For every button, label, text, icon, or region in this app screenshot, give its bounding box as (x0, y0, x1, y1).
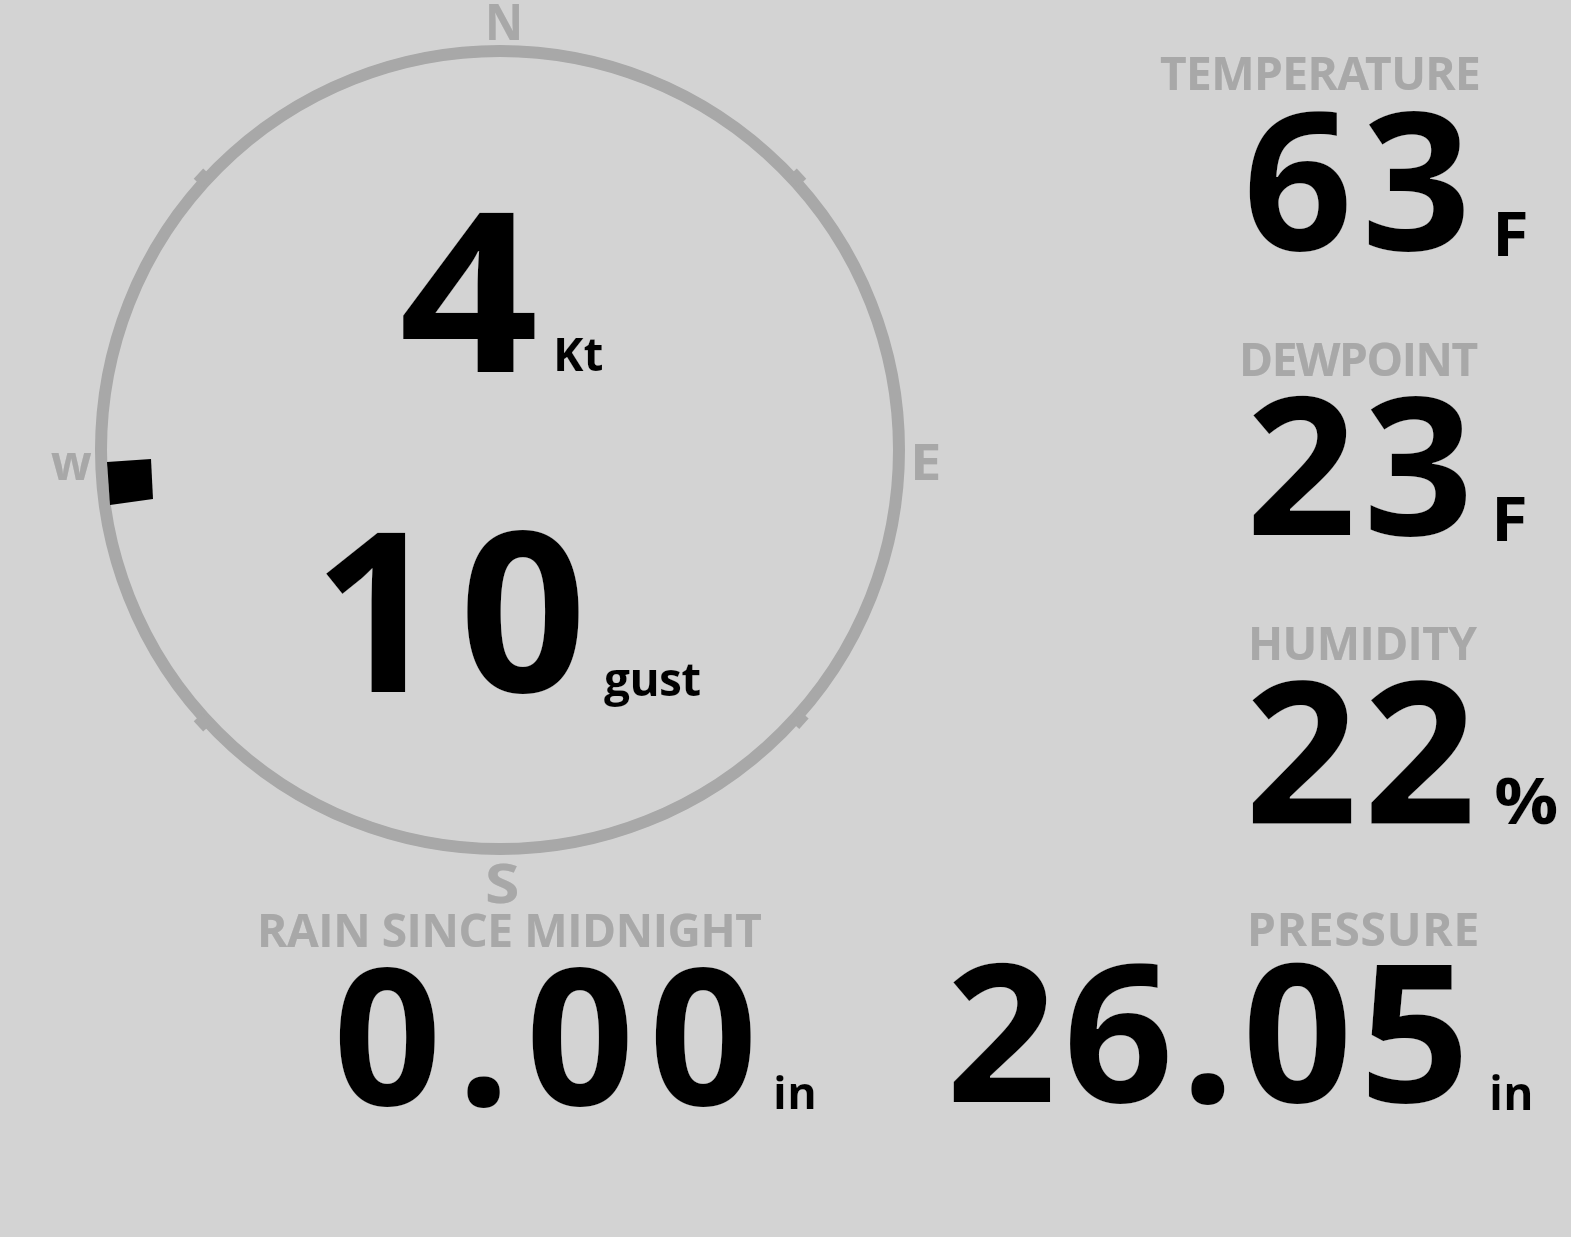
staticText: % (1494, 755, 1559, 844)
button[interactable]: Humidity 22 percent (1150, 610, 1560, 835)
button[interactable]: Wind 4 knots from the west, gusting 10 (95, 45, 905, 855)
staticText: in (773, 1061, 818, 1122)
button[interactable]: Rain since midnight 0.00 inches (250, 895, 830, 1120)
button[interactable]: Dewpoint 23 degrees Fahrenheit (1150, 325, 1550, 550)
staticText: S (485, 846, 520, 918)
staticText: RAIN SINCE MIDNIGHT (257, 898, 762, 961)
staticText: 63 (1243, 45, 1481, 306)
staticText: PRESSURE (1247, 897, 1480, 960)
staticText: w (51, 425, 92, 494)
staticText: TEMPERATURE (1160, 41, 1481, 104)
staticText: F (1491, 477, 1528, 559)
staticText: N (485, 0, 524, 54)
staticText: HUMIDITY (1248, 611, 1477, 674)
staticText: 0.00 (333, 902, 773, 1161)
button[interactable]: Temperature 63 degrees Fahrenheit (1150, 40, 1550, 265)
staticText: 10 (313, 454, 606, 758)
staticText: 22 (1245, 612, 1482, 880)
staticText: 23 (1246, 329, 1481, 592)
staticText: Kt (553, 322, 604, 385)
staticText: in (1489, 1061, 1534, 1124)
staticText: 4 (399, 135, 539, 437)
button[interactable]: Pressure 26.05 inches (930, 895, 1550, 1120)
staticText: 26.05 (946, 896, 1477, 1159)
staticText: DEWPOINT (1239, 327, 1477, 390)
staticText: F (1492, 192, 1529, 274)
staticText: gust (604, 647, 701, 710)
staticText: E (910, 425, 942, 494)
